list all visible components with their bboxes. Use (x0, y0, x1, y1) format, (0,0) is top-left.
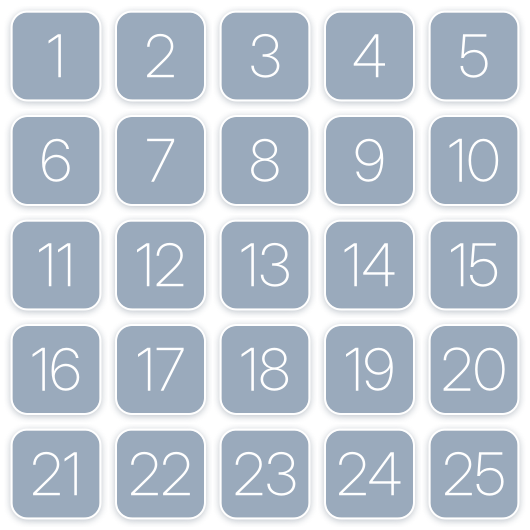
button[interactable]: 7 (115, 115, 206, 206)
button[interactable]: 2 (115, 10, 206, 101)
button[interactable]: 3 (219, 10, 310, 101)
staticText: 6 (40, 125, 72, 196)
staticText: 2 (144, 20, 176, 91)
staticText: 18 (239, 334, 290, 405)
button[interactable]: 6 (10, 115, 101, 206)
staticText: 3 (249, 20, 281, 91)
staticText: 12 (135, 229, 186, 300)
button[interactable]: 13 (219, 219, 310, 310)
button[interactable]: 12 (115, 219, 206, 310)
button[interactable]: 25 (428, 428, 519, 519)
staticText: 10 (447, 125, 500, 196)
staticText: 15 (449, 229, 499, 300)
staticText: 9 (353, 125, 385, 196)
button[interactable]: 22 (115, 428, 206, 519)
button[interactable]: 1 (10, 10, 101, 101)
button[interactable]: 15 (428, 219, 519, 310)
button[interactable]: 20 (428, 324, 519, 415)
staticText: 14 (342, 229, 396, 300)
staticText: 21 (30, 438, 81, 509)
button[interactable]: 10 (428, 115, 519, 206)
button[interactable]: 11 (10, 219, 101, 310)
button[interactable]: 18 (219, 324, 310, 415)
button[interactable]: 17 (115, 324, 206, 415)
staticText: 22 (128, 438, 192, 509)
staticText: 5 (458, 20, 489, 91)
button[interactable]: 8 (219, 115, 310, 206)
button[interactable]: 9 (324, 115, 415, 206)
staticText: 19 (344, 334, 395, 405)
staticText: 4 (352, 20, 387, 91)
staticText: 7 (145, 125, 175, 196)
staticText: 23 (233, 438, 297, 509)
button[interactable]: 16 (10, 324, 101, 415)
button[interactable]: 24 (324, 428, 415, 519)
button[interactable]: 14 (324, 219, 415, 310)
staticText: 13 (239, 229, 290, 300)
staticText: 20 (441, 334, 507, 405)
staticText: 11 (37, 229, 75, 300)
button[interactable]: 5 (428, 10, 519, 101)
button[interactable]: 4 (324, 10, 415, 101)
staticText: 24 (336, 438, 402, 509)
staticText: 16 (30, 334, 81, 405)
staticText: 17 (136, 334, 185, 405)
staticText: 8 (249, 125, 281, 196)
button[interactable]: 23 (219, 428, 310, 519)
button[interactable]: 19 (324, 324, 415, 415)
staticText: 1 (46, 20, 65, 91)
button[interactable]: 21 (10, 428, 101, 519)
staticText: 25 (442, 438, 505, 509)
